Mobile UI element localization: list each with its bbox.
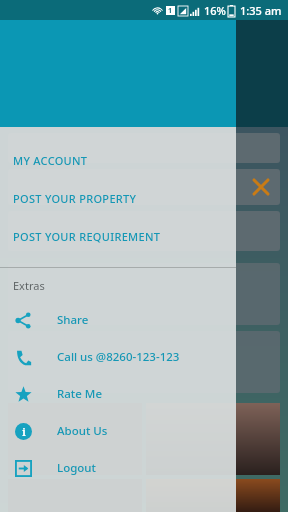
button[interactable]: POST YOUR PROPERTY — [0, 179, 236, 217]
staticText: Logout — [57, 460, 96, 476]
staticText: Rate Me — [57, 386, 102, 402]
button[interactable]: Logout — [0, 449, 236, 486]
button[interactable]: Share — [0, 301, 236, 338]
button[interactable]: MY ACCOUNT — [0, 141, 236, 179]
button[interactable]: Rate Me — [0, 375, 236, 412]
staticText: i — [22, 425, 26, 439]
staticText: MY ACCOUNT — [13, 153, 88, 168]
staticText: POST YOUR PROPERTY — [13, 191, 137, 206]
staticText: Extras — [13, 278, 45, 293]
button[interactable]: Call us @8260-123-123 — [0, 338, 236, 375]
staticText: 1 — [168, 6, 173, 15]
staticText: 16% — [204, 3, 226, 18]
staticText: Share — [57, 312, 89, 328]
staticText: POST YOUR REQUIREMENT — [13, 229, 161, 244]
staticText: Call us @8260-123-123 — [57, 349, 180, 365]
staticText: About Us — [57, 423, 108, 439]
staticText: 1:35 am — [240, 3, 282, 18]
button[interactable]: i — [0, 412, 236, 449]
button[interactable]: POST YOUR REQUIREMENT — [0, 217, 236, 255]
